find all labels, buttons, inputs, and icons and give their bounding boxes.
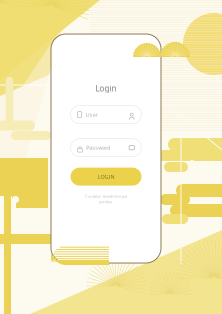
staticText: Curabitur blandit tempus: [84, 194, 127, 199]
staticText: User: [86, 111, 98, 118]
staticText: Login: [95, 83, 116, 94]
button[interactable]: User: [70, 106, 141, 124]
button[interactable]: Password: [70, 139, 141, 157]
button[interactable]: LOGIN: [70, 168, 141, 186]
staticText: LOGIN: [97, 173, 114, 180]
staticText: porttitor: [99, 199, 113, 204]
staticText: Password: [86, 144, 110, 151]
